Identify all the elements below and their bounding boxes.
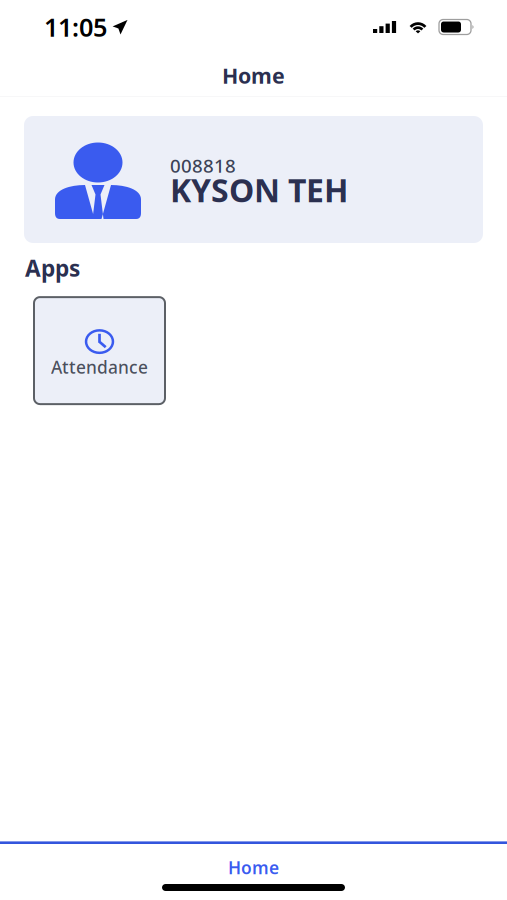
staticText: Home bbox=[228, 856, 279, 879]
staticText: 008818 bbox=[170, 153, 236, 178]
staticText: KYSON TEH bbox=[170, 168, 348, 211]
staticText: 11:05 bbox=[44, 10, 107, 44]
staticText: Attendance bbox=[51, 356, 148, 379]
staticText: Apps bbox=[25, 253, 80, 283]
button[interactable]: Home bbox=[0, 844, 507, 884]
button[interactable]: Attendance bbox=[34, 297, 165, 404]
staticText: Home bbox=[222, 61, 285, 90]
